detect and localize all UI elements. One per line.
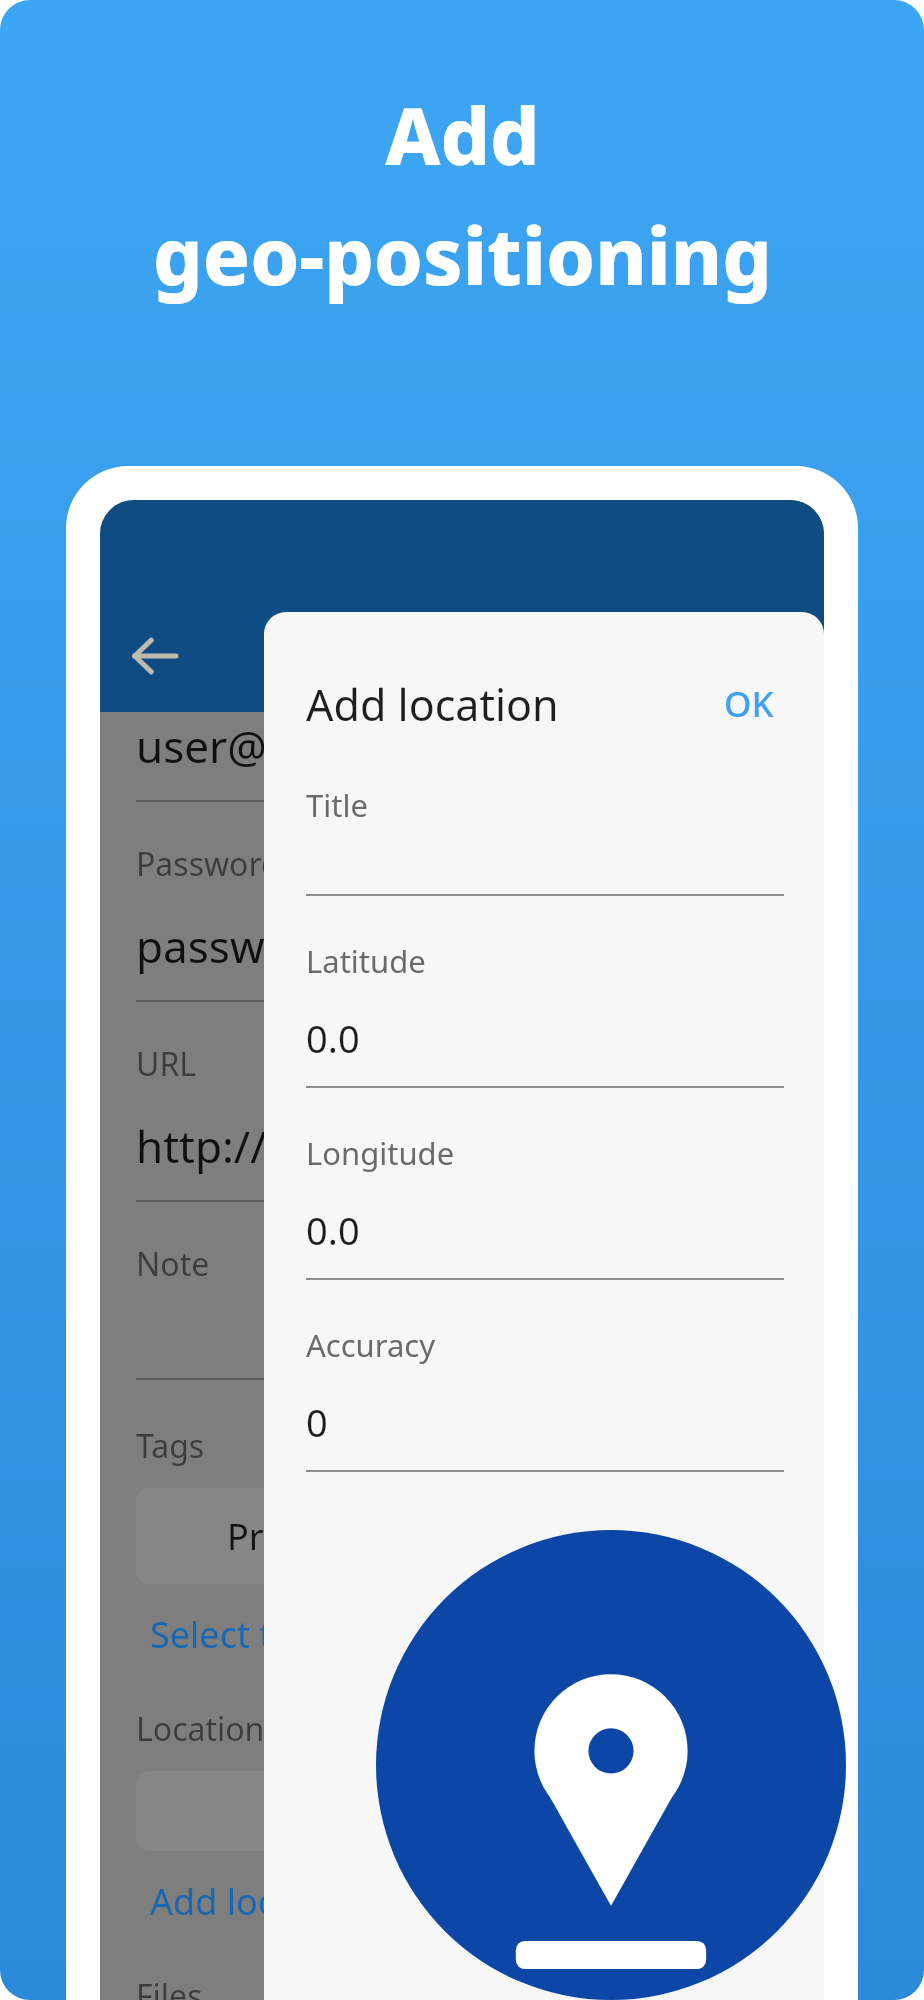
staticText: geo-positioning [153, 202, 772, 308]
staticText: Password [136, 842, 281, 886]
staticText: Longitude [306, 1132, 455, 1174]
button[interactable] [136, 1771, 436, 1851]
staticText: Note [136, 1242, 210, 1286]
button[interactable]: Select tags [118, 1610, 332, 1659]
staticText: Private [227, 1512, 345, 1561]
button[interactable]: Back [116, 618, 192, 694]
staticText: Add location [150, 1877, 362, 1926]
staticText: Locations [136, 1707, 280, 1751]
staticText: OK [724, 680, 774, 728]
staticText: Latitude [306, 940, 426, 982]
staticText: 0.0 [306, 1012, 360, 1064]
button[interactable]: OK [714, 670, 784, 738]
staticText: Tags [136, 1424, 205, 1468]
staticText: Add [385, 82, 540, 188]
staticText: Title [306, 784, 368, 826]
staticText: password123 [136, 916, 411, 976]
button[interactable]: Private [136, 1488, 436, 1584]
staticText: Files [136, 1974, 203, 2000]
button[interactable]: Add location [118, 1877, 362, 1926]
staticText: Select tags [150, 1610, 332, 1659]
staticText: http://gmail.com [136, 1116, 483, 1176]
staticText: 0 [306, 1396, 328, 1448]
staticText: Add location [306, 675, 559, 734]
staticText: URL [136, 1042, 197, 1086]
staticText: 0.0 [306, 1204, 360, 1256]
staticText: Accuracy [306, 1324, 435, 1366]
staticText: user@gmail.com [136, 716, 484, 776]
button[interactable]: Add location [376, 1530, 846, 2000]
